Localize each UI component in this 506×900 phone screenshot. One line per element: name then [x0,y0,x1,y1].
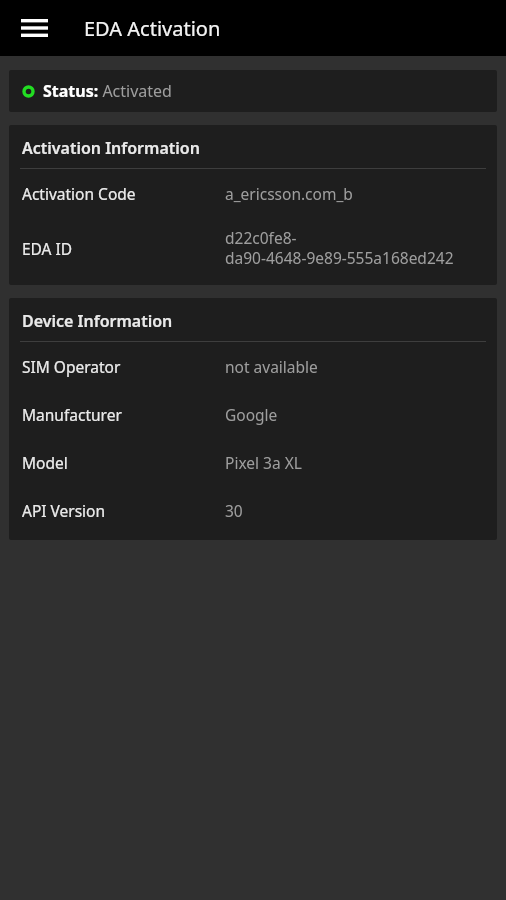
button[interactable]: SIM Operator [9,342,497,390]
staticText: EDA Activation [84,15,221,42]
staticText: SIM Operator [22,356,225,377]
button[interactable]: Open navigation menu [6,0,62,56]
button[interactable]: Activation Code [9,169,497,217]
staticText: Pixel 3a XL [225,452,302,473]
staticText: Google [225,404,278,425]
staticText: 30 [225,500,243,521]
button[interactable]: EDA ID [9,217,497,279]
button[interactable]: Manufacturer [9,390,497,438]
staticText: Device Information [22,310,173,332]
staticText: d22c0fe8-da90-4648-9e89-555a168ed242 [225,227,484,269]
staticText: Status: Activated [43,80,172,102]
staticText: a_ericsson.com_b [225,183,353,204]
button[interactable]: Model [9,438,497,486]
staticText: Model [22,452,225,473]
staticText: API Version [22,500,225,521]
button[interactable]: API Version [9,486,497,534]
staticText: Manufacturer [22,404,225,425]
staticText: Activation Information [22,137,200,159]
staticText: not available [225,356,318,377]
staticText: EDA ID [22,238,225,259]
staticText: Activation Code [22,183,225,204]
button[interactable]: Status: Activated [9,70,497,112]
